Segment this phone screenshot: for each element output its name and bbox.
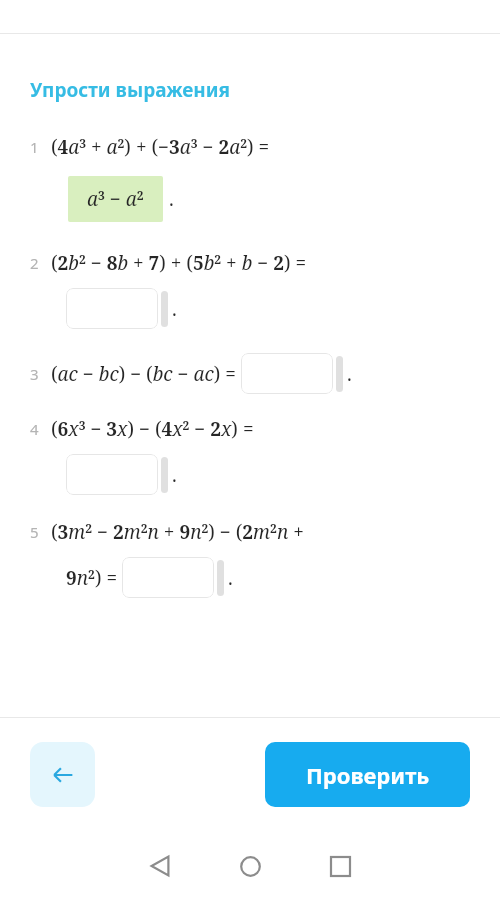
button[interactable]: Назад <box>30 742 95 807</box>
staticText: . <box>228 565 233 591</box>
staticText: . <box>347 361 352 387</box>
button[interactable] <box>241 353 333 394</box>
button[interactable] <box>122 557 214 598</box>
button[interactable]: Home <box>205 841 295 891</box>
staticText: (ac − bc) − (bc − ac) = <box>51 361 241 387</box>
staticText: 1 <box>30 137 39 157</box>
staticText: 4 <box>30 419 39 439</box>
staticText: 2 <box>30 253 39 273</box>
button[interactable]: Упрости выражения <box>30 77 231 103</box>
staticText: . <box>172 296 177 322</box>
staticText: 9n2) = <box>66 565 122 591</box>
button[interactable] <box>66 454 158 495</box>
staticText: (2b2 − 8b + 7) + (5b2 + b − 2) = <box>51 250 307 276</box>
staticText: . <box>169 186 174 212</box>
staticText: (6x3 − 3x) − (4x2 − 2x) = <box>51 416 254 442</box>
button[interactable]: Back <box>115 841 205 891</box>
button[interactable]: Recent apps <box>295 841 385 891</box>
staticText: Проверить <box>306 760 430 790</box>
staticText: 5 <box>30 522 39 542</box>
staticText: a3 − a2 <box>87 186 144 212</box>
button[interactable] <box>66 288 158 329</box>
staticText: . <box>172 462 177 488</box>
staticText: (4a3 + a2) + (−3a3 − 2a2) = <box>51 134 270 160</box>
button[interactable]: a3 − a2 <box>87 186 144 212</box>
staticText: (3m2 − 2m2n + 9n2) − (2m2n + <box>51 519 304 545</box>
button[interactable]: Проверить <box>265 742 470 807</box>
staticText: 3 <box>30 364 39 384</box>
